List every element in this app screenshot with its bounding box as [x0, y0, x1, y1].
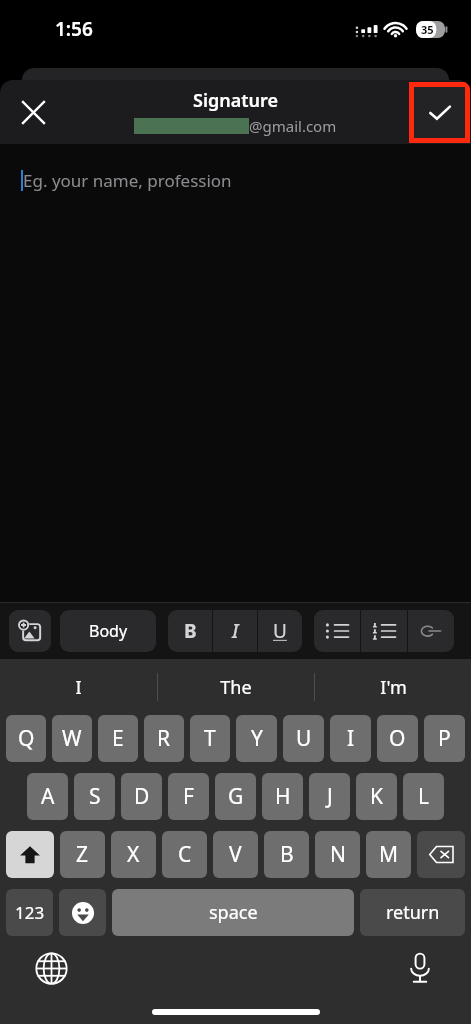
- staticText: H: [275, 782, 291, 811]
- staticText: L: [418, 782, 430, 811]
- staticText: Eg. your name, profession: [23, 169, 232, 192]
- staticText: I: [232, 618, 239, 644]
- button[interactable]: Body: [60, 610, 156, 652]
- staticText: I: [75, 675, 82, 700]
- button[interactable]: Close: [10, 89, 56, 135]
- staticText: B: [280, 840, 294, 869]
- staticText: U: [273, 618, 287, 644]
- button[interactable]: I: [0, 659, 157, 715]
- staticText: S: [89, 782, 101, 811]
- button[interactable]: P: [424, 715, 465, 762]
- button[interactable]: Dictate: [397, 945, 443, 991]
- button[interactable]: U: [283, 715, 324, 762]
- button[interactable]: D: [121, 773, 162, 820]
- staticText: 123: [15, 901, 45, 924]
- button[interactable]: W: [52, 715, 92, 762]
- button[interactable]: B: [264, 831, 309, 878]
- staticText: X: [127, 840, 140, 869]
- button[interactable]: G: [215, 773, 256, 820]
- staticText: J: [327, 782, 333, 811]
- button[interactable]: K: [356, 773, 397, 820]
- staticText: return: [386, 900, 440, 925]
- button[interactable]: Numbered list: [361, 610, 407, 652]
- button[interactable]: Q: [6, 715, 46, 762]
- button[interactable]: H: [262, 773, 303, 820]
- button[interactable]: L: [403, 773, 444, 820]
- button[interactable]: 123: [6, 889, 53, 936]
- staticText: V: [229, 840, 242, 869]
- button[interactable]: I'm: [315, 659, 471, 715]
- button[interactable]: T: [190, 715, 230, 762]
- button[interactable]: Y: [236, 715, 277, 762]
- button[interactable]: O: [377, 715, 418, 762]
- button[interactable]: Switch keyboard: [28, 945, 74, 991]
- button[interactable]: Underline: [258, 610, 302, 652]
- button[interactable]: S: [74, 773, 115, 820]
- staticText: A: [41, 782, 55, 811]
- staticText: @gmail.com: [249, 116, 337, 136]
- staticText: I: [347, 724, 355, 753]
- button[interactable]: Shift: [6, 831, 54, 878]
- staticText: F: [183, 782, 194, 811]
- button[interactable]: Bold: [168, 610, 212, 652]
- button[interactable]: Z: [60, 831, 105, 878]
- staticText: C: [178, 840, 192, 869]
- button[interactable]: Delete: [417, 831, 465, 878]
- staticText: U: [296, 724, 312, 753]
- button[interactable]: I: [330, 715, 371, 762]
- button[interactable]: A: [27, 773, 68, 820]
- staticText: N: [330, 840, 346, 869]
- staticText: Z: [76, 840, 89, 869]
- button[interactable]: Save signature: [414, 87, 465, 138]
- staticText: R: [157, 724, 171, 753]
- button[interactable]: E: [98, 715, 138, 762]
- button[interactable]: return: [360, 889, 465, 936]
- button[interactable]: Insert image: [9, 610, 51, 652]
- button[interactable]: Emoji: [59, 889, 106, 936]
- staticText: The: [220, 675, 252, 700]
- staticText: 35: [421, 22, 434, 37]
- staticText: Body: [89, 620, 128, 642]
- button[interactable]: V: [213, 831, 258, 878]
- staticText: Q: [18, 724, 35, 753]
- button[interactable]: Indent: [408, 610, 454, 652]
- staticText: O: [389, 724, 406, 753]
- button[interactable]: Italic: [213, 610, 257, 652]
- staticText: M: [379, 840, 399, 869]
- staticText: G: [228, 782, 244, 811]
- staticText: T: [204, 724, 216, 753]
- staticText: P: [438, 724, 451, 753]
- button[interactable]: N: [315, 831, 360, 878]
- button[interactable]: X: [111, 831, 156, 878]
- staticText: space: [209, 900, 258, 925]
- button[interactable]: F: [168, 773, 209, 820]
- staticText: 1:56: [55, 16, 93, 42]
- staticText: I'm: [380, 675, 407, 700]
- button[interactable]: R: [144, 715, 184, 762]
- staticText: K: [370, 782, 383, 811]
- button[interactable]: space: [112, 889, 354, 936]
- button[interactable]: The: [158, 659, 314, 715]
- staticText: Signature: [193, 88, 279, 113]
- staticText: E: [112, 724, 124, 753]
- button[interactable]: C: [162, 831, 207, 878]
- button[interactable]: M: [366, 831, 411, 878]
- button[interactable]: J: [309, 773, 350, 820]
- staticText: Y: [251, 724, 263, 753]
- staticText: D: [134, 782, 150, 811]
- staticText: W: [62, 724, 82, 753]
- staticText: B: [184, 618, 197, 644]
- button[interactable]: Bulleted list: [314, 610, 360, 652]
